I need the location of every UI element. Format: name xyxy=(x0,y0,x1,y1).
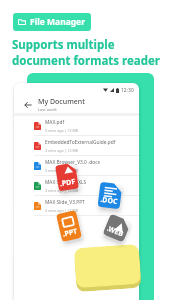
staticText: .PDF xyxy=(59,177,77,189)
staticText: .WEB xyxy=(105,224,125,239)
button[interactable]: MAX.pdf xyxy=(14,116,139,135)
staticText: My Document xyxy=(38,97,85,107)
staticText: document formats reader xyxy=(12,53,160,69)
button[interactable]: File Manager xyxy=(13,13,91,31)
staticText: MAX Sheet_V3.XLS xyxy=(45,179,87,186)
staticText: 3 mins ago | 12 MB xyxy=(45,148,79,153)
staticText: MAX Slide_V3.PPT xyxy=(45,199,85,206)
staticText: MAX Browser_V3.0 .docx xyxy=(45,159,101,166)
button[interactable]: MAX Slide_V3.PPT xyxy=(14,196,139,215)
staticText: 3 mins ago | 12 MB xyxy=(45,168,79,173)
staticText: Supports multiple xyxy=(12,37,115,53)
button[interactable]: EmbeddedToExternalGuide.pdf xyxy=(14,136,139,155)
staticText: 3 mins ago | 12 MB xyxy=(45,128,79,133)
staticText: Last week xyxy=(38,107,57,112)
staticText: .PPT xyxy=(62,226,79,239)
staticText: 12:30 xyxy=(121,87,134,94)
staticText: MAX.pdf xyxy=(45,119,65,126)
button[interactable]: Back xyxy=(22,99,33,110)
button[interactable]: MAX Sheet_V3.XLS xyxy=(14,176,139,195)
button[interactable]: MAX Browser_V3.0 .docx xyxy=(14,156,139,175)
staticText: 3 mins ago | 12 MB xyxy=(45,188,79,193)
staticText: EmbeddedToExternalGuide.pdf xyxy=(45,139,116,146)
staticText: 3 mins ago | 12 MB xyxy=(45,208,79,213)
staticText: .DOC xyxy=(100,195,119,207)
staticText: File Manager xyxy=(30,16,85,28)
